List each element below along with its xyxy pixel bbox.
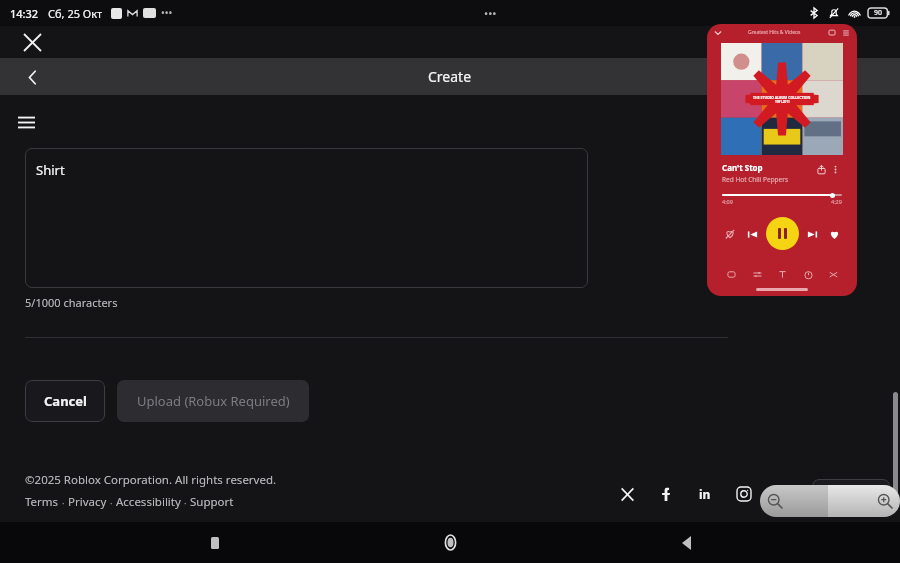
staticText: Red Hot Chili Peppers	[722, 175, 789, 184]
button[interactable]: Home	[429, 522, 471, 563]
button[interactable]: Back	[14, 59, 50, 95]
button[interactable]: YouTube	[772, 483, 794, 505]
button[interactable]: Privacy	[68, 494, 107, 510]
staticText: THE STUDIO ALBUM COLLECTION	[753, 95, 811, 100]
staticText: in	[699, 486, 711, 502]
button[interactable]: Cast	[828, 29, 836, 37]
button[interactable]: Next	[802, 224, 822, 244]
staticText: Upload (Robux Required)	[137, 392, 290, 410]
staticText: Shirt	[36, 161, 65, 179]
button[interactable]: LinkedIn	[694, 483, 716, 505]
staticText: 90	[874, 8, 883, 18]
staticText: English	[840, 486, 880, 502]
button[interactable]: More options	[828, 162, 842, 176]
staticText: Can't Stop	[722, 162, 763, 173]
staticText: ·	[59, 495, 68, 510]
staticText: Create	[428, 67, 472, 86]
staticText: Support	[190, 494, 234, 510]
button[interactable]: Dislike	[721, 225, 739, 243]
staticText: Privacy	[68, 494, 107, 510]
button[interactable]: Close	[16, 26, 48, 58]
button[interactable]: Collapse	[714, 29, 722, 37]
button[interactable]: Cancel	[25, 380, 105, 422]
button[interactable]: Recents	[194, 522, 236, 563]
staticText: •••	[161, 6, 173, 20]
button[interactable]: Pause	[766, 217, 799, 250]
staticText: 4:29	[831, 198, 842, 205]
button[interactable]: Share	[814, 162, 828, 176]
staticText: ·	[107, 495, 116, 510]
button[interactable]: English	[812, 479, 890, 509]
staticText: Greatest Hits & Videos	[748, 29, 801, 36]
button[interactable]: Lyrics	[775, 267, 789, 281]
button[interactable]: Sleep timer	[801, 267, 815, 281]
staticText: 1991-2011	[775, 100, 790, 104]
staticText: 4:09	[722, 198, 733, 205]
button[interactable]: Upload (Robux Required)	[117, 380, 309, 422]
button[interactable]: Equalizer	[750, 267, 764, 281]
button[interactable]: Back	[665, 522, 707, 563]
staticText: Сб, 25 Окт	[48, 6, 103, 21]
staticText: 5/1000 characters	[25, 295, 118, 310]
button[interactable]: Accessibility	[116, 494, 181, 510]
button[interactable]: Instagram	[733, 483, 755, 505]
staticText: Accessibility	[116, 494, 181, 510]
staticText: 14:32	[10, 6, 39, 21]
button[interactable]: Support	[190, 494, 234, 510]
staticText: Cancel	[44, 392, 87, 410]
button[interactable]: Zoom in	[828, 485, 900, 517]
button[interactable]: X	[616, 483, 638, 505]
button[interactable]: Zoom out	[760, 485, 828, 517]
staticText: •••	[484, 6, 497, 21]
staticText: ©2025 Roblox Corporation. All rights res…	[25, 472, 277, 488]
button[interactable]: Queue	[842, 29, 850, 37]
button[interactable]: Previous	[742, 224, 762, 244]
button[interactable]: Repeat	[724, 267, 738, 281]
button[interactable]: Like	[825, 225, 843, 243]
button[interactable]: Shirt	[25, 148, 588, 288]
button[interactable]: Facebook	[655, 483, 677, 505]
staticText: Terms	[25, 494, 59, 510]
button[interactable]: Menu	[18, 109, 44, 135]
button[interactable]: Terms	[25, 494, 59, 510]
button[interactable]: Shuffle	[826, 267, 840, 281]
staticText: ·	[181, 495, 190, 510]
